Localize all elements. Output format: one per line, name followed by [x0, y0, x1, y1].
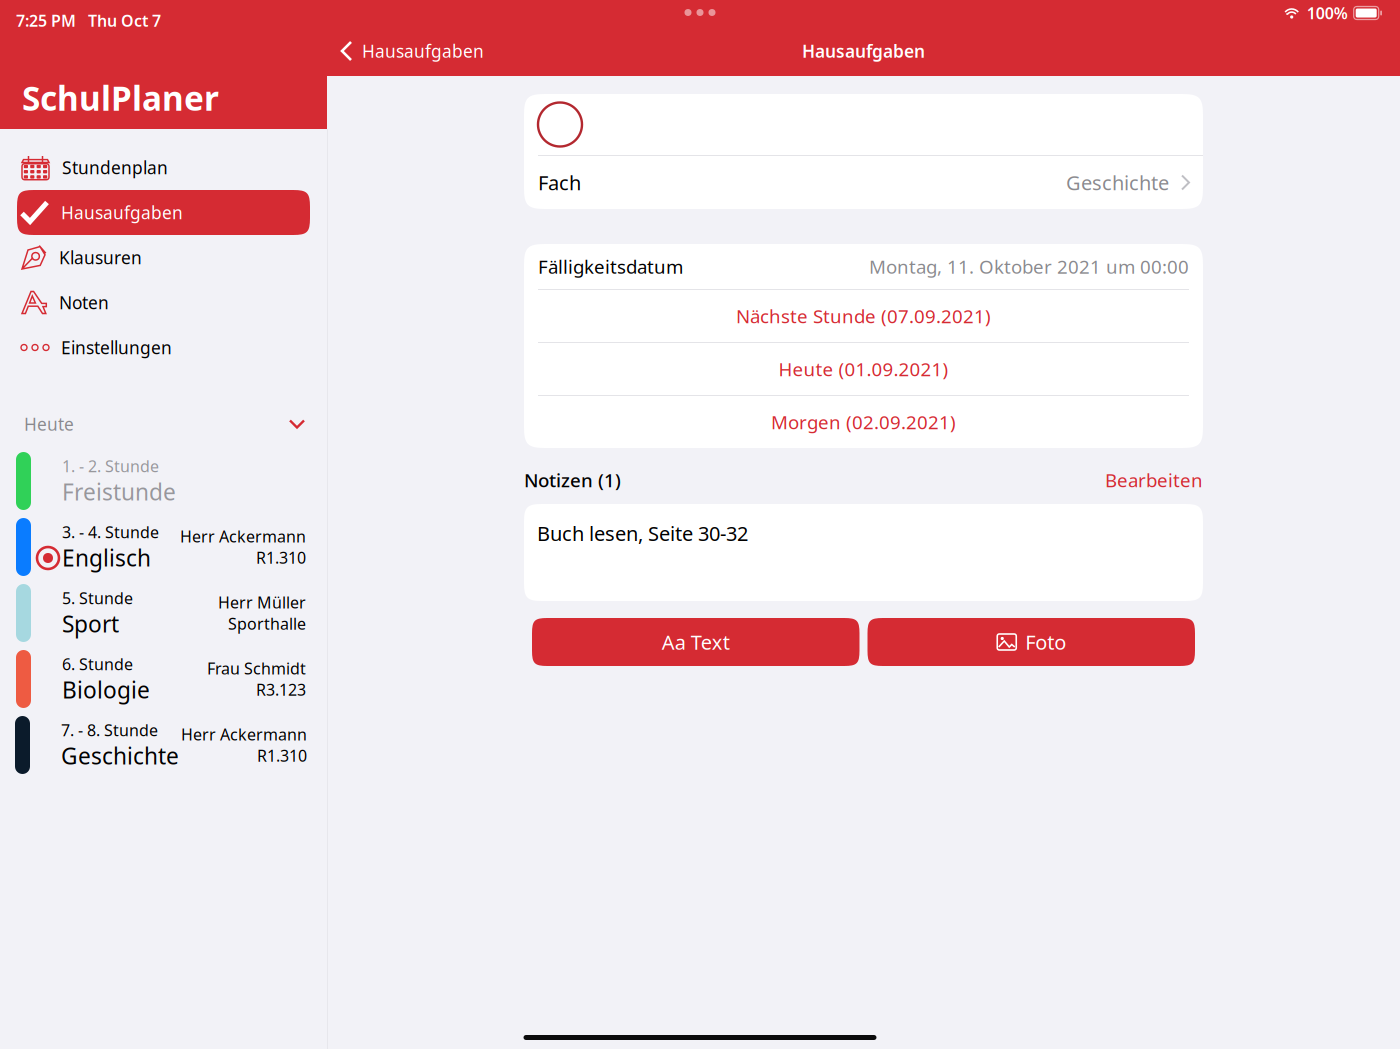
staticText: Notizen (1): [524, 468, 621, 492]
staticText: Herr Müller: [218, 592, 306, 613]
staticText: Morgen (02.09.2021): [771, 410, 956, 434]
staticText: Nächste Stunde (07.09.2021): [736, 304, 991, 328]
staticText: Noten: [59, 291, 109, 314]
button[interactable]: Fach: [524, 156, 1203, 209]
staticText: Englisch: [62, 543, 151, 573]
button[interactable]: 1. - 2. Stunde: [0, 448, 327, 514]
staticText: Hausaufgaben: [802, 39, 925, 62]
button[interactable]: Stundenplan: [0, 145, 327, 190]
staticText: Montag, 11. Oktober 2021 um 00:00: [869, 254, 1189, 279]
button[interactable]: Noten: [0, 280, 327, 325]
staticText: Herr Ackermann: [181, 724, 307, 745]
staticText: Sport: [62, 609, 119, 639]
staticText: Bearbeiten: [1105, 468, 1203, 492]
staticText: Biologie: [62, 675, 150, 705]
button[interactable]: Nächste Stunde (07.09.2021): [524, 290, 1203, 342]
button[interactable]: Klausuren: [0, 235, 327, 280]
staticText: Foto: [1025, 629, 1066, 655]
staticText: Thu Oct 7: [88, 10, 161, 31]
staticText: 100%: [1307, 2, 1348, 24]
staticText: Klausuren: [59, 246, 142, 269]
staticText: 3. - 4. Stunde: [62, 521, 159, 542]
staticText: R3.123: [256, 679, 306, 700]
staticText: Fälligkeitsdatum: [538, 254, 683, 279]
button[interactable]: Morgen (02.09.2021): [524, 396, 1203, 448]
staticText: Heute: [24, 412, 74, 435]
button[interactable]: Hausaufgaben: [331, 29, 494, 73]
button[interactable]: 7. - 8. Stunde: [0, 712, 327, 778]
staticText: SchulPlaner: [22, 76, 219, 120]
staticText: Geschichte: [61, 741, 179, 771]
button[interactable]: Heute (01.09.2021): [524, 343, 1203, 395]
button[interactable]: Heute: [0, 407, 327, 441]
staticText: Hausaufgaben: [61, 201, 183, 224]
staticText: 5. Stunde: [62, 587, 133, 608]
staticText: 7. - 8. Stunde: [61, 719, 158, 740]
button[interactable]: Foto: [867, 618, 1195, 666]
button[interactable]: 5. Stunde: [0, 580, 327, 646]
staticText: Freistunde: [62, 477, 176, 507]
staticText: 7:25 PM: [16, 10, 76, 31]
staticText: 6. Stunde: [62, 653, 133, 674]
staticText: Heute (01.09.2021): [778, 357, 948, 381]
staticText: Hausaufgaben: [362, 39, 484, 62]
staticText: 1. - 2. Stunde: [62, 455, 159, 476]
staticText: Sporthalle: [228, 613, 306, 634]
staticText: Buch lesen, Seite 30-32: [537, 520, 748, 547]
button[interactable]: Einstellungen: [0, 325, 327, 370]
button[interactable]: Hausaufgaben: [0, 190, 327, 235]
button[interactable]: 6. Stunde: [0, 646, 327, 712]
button[interactable]: 3. - 4. Stunde: [0, 514, 327, 580]
staticText: Stundenplan: [62, 156, 168, 179]
staticText: Frau Schmidt: [207, 658, 306, 679]
staticText: Aa Text: [662, 629, 730, 655]
button[interactable]: Aa Text: [532, 618, 859, 666]
button[interactable]: Bearbeiten: [1105, 468, 1203, 492]
staticText: Einstellungen: [61, 336, 172, 359]
staticText: R1.310: [257, 745, 307, 766]
staticText: Geschichte: [1066, 169, 1169, 196]
button[interactable]: Als erledigt markieren: [538, 102, 582, 146]
staticText: Fach: [538, 169, 581, 196]
staticText: R1.310: [256, 547, 306, 568]
staticText: Herr Ackermann: [180, 526, 306, 547]
